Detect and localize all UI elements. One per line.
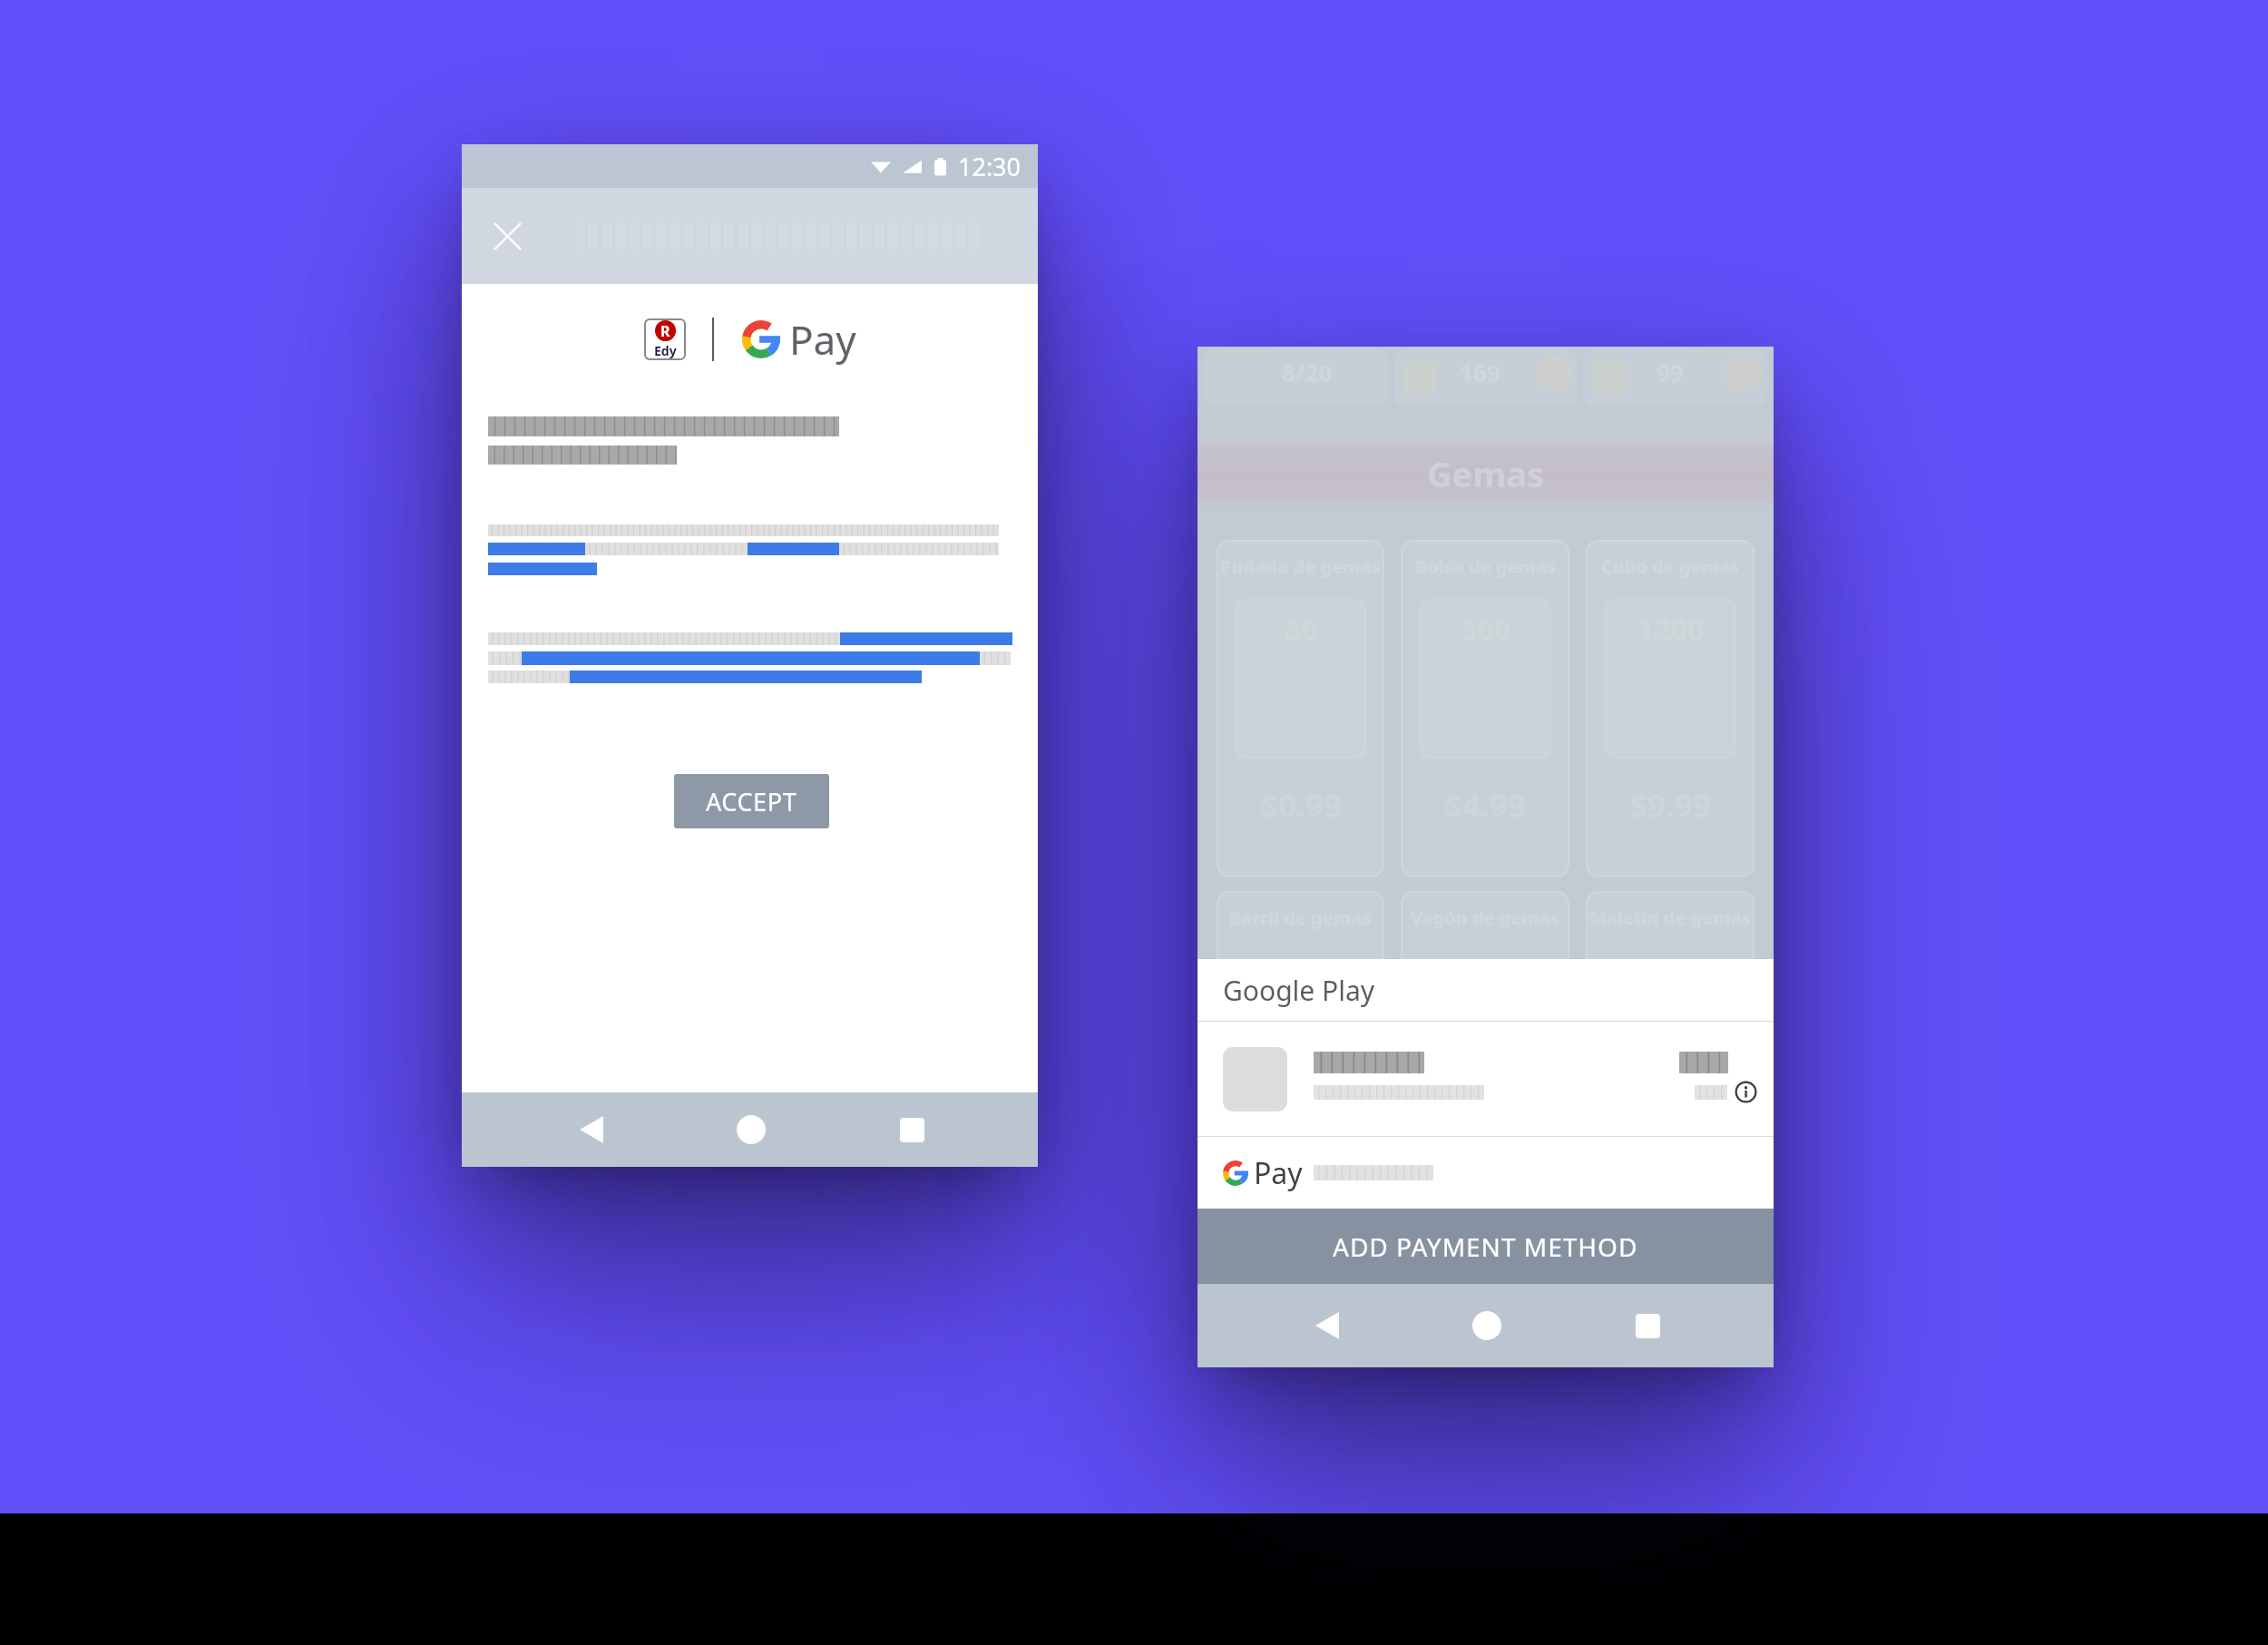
button[interactable]: Maletín de gemas bbox=[1586, 891, 1755, 1000]
button[interactable] bbox=[1198, 1022, 1774, 1136]
staticText: 99 bbox=[1657, 357, 1684, 388]
button[interactable]: Back bbox=[564, 1092, 619, 1167]
staticText: 8/20 bbox=[1282, 357, 1333, 388]
staticText: Gemas bbox=[1427, 450, 1545, 497]
button[interactable]: Close bbox=[474, 203, 540, 269]
button[interactable]: Home bbox=[723, 1092, 779, 1167]
button[interactable]: Recents bbox=[1620, 1284, 1675, 1367]
staticText: ACCEPT bbox=[706, 785, 797, 818]
button[interactable]: Pay bbox=[1198, 1137, 1774, 1209]
button[interactable]: ACCEPT bbox=[674, 774, 829, 828]
button[interactable]: ADD PAYMENT METHOD bbox=[1198, 1209, 1774, 1284]
staticText: R bbox=[660, 321, 670, 341]
staticText: 169 bbox=[1460, 357, 1501, 388]
staticText: Pay bbox=[789, 312, 856, 367]
button[interactable]: Home bbox=[1459, 1284, 1515, 1367]
staticText: Pay bbox=[1254, 1153, 1303, 1193]
staticText: ADD PAYMENT METHOD bbox=[1333, 1229, 1638, 1264]
button[interactable]: Back bbox=[1300, 1284, 1354, 1367]
staticText: Google Play bbox=[1223, 972, 1375, 1009]
staticText: 12:30 bbox=[958, 150, 1022, 183]
button[interactable]: 169 bbox=[1393, 348, 1578, 406]
button[interactable]: Vagón de gemas bbox=[1401, 891, 1569, 1000]
staticText: Edy bbox=[654, 342, 677, 359]
button[interactable]: Barril de gemas bbox=[1217, 891, 1384, 1000]
button[interactable]: Recents bbox=[885, 1092, 939, 1167]
button[interactable]: 99 bbox=[1583, 348, 1767, 406]
